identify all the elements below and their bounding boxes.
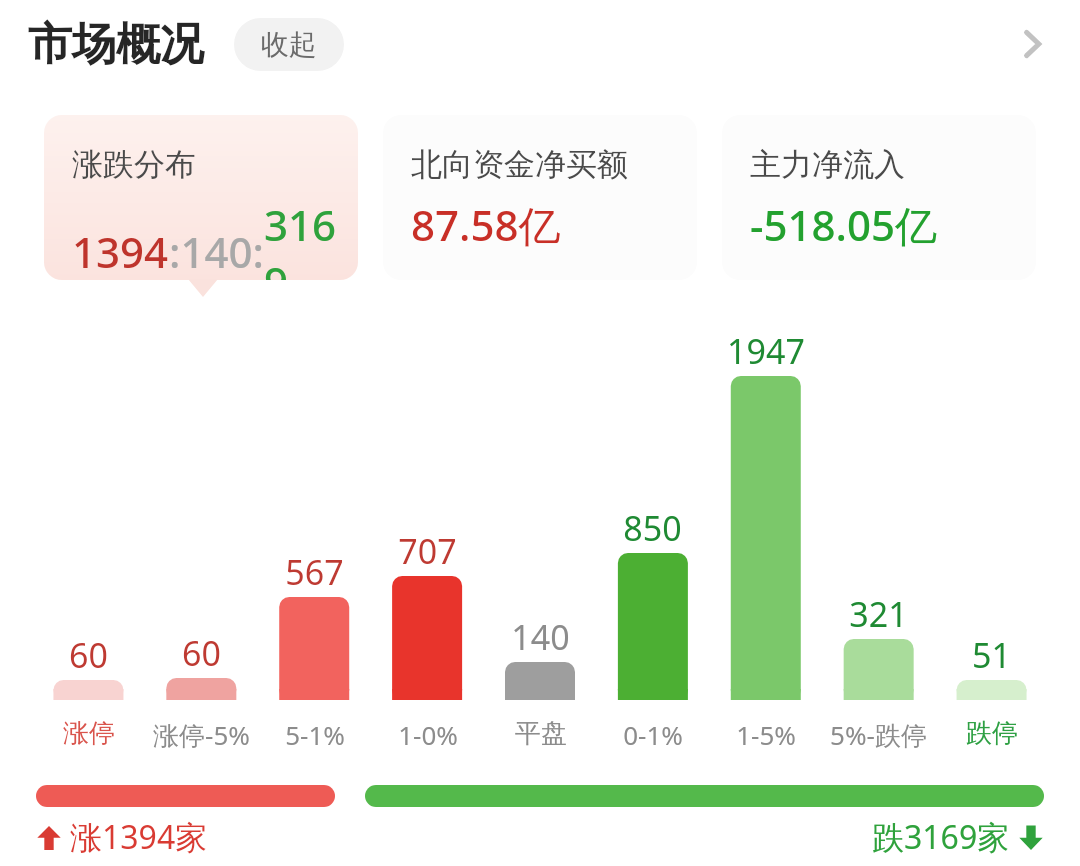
- staticText: 市场概况: [28, 17, 204, 72]
- staticText: 涨1394家: [70, 815, 208, 859]
- staticText: 3169: [264, 196, 358, 280]
- staticText: -518.05亿: [750, 196, 938, 253]
- staticText: 87.58亿: [411, 196, 561, 253]
- staticText: 主力净流入: [750, 145, 905, 184]
- staticText: 涨跌分布: [72, 145, 196, 184]
- staticText: 北向资金净买额: [411, 145, 628, 184]
- staticText: 51: [972, 632, 1011, 678]
- staticText: 跌停: [966, 717, 1018, 750]
- staticText: 321: [849, 591, 908, 637]
- staticText: :140:: [169, 223, 264, 280]
- staticText: 涨停: [63, 717, 115, 750]
- staticText: 收起: [261, 27, 317, 62]
- button[interactable]: 展开更多: [994, 6, 1070, 82]
- staticText: 跌3169家: [872, 815, 1010, 859]
- staticText: 60: [69, 632, 108, 678]
- staticText: 平盘: [515, 717, 567, 750]
- staticText: 1-5%: [736, 717, 796, 752]
- button[interactable]: 涨跌分布: [44, 115, 358, 280]
- staticText: 涨停-5%: [153, 717, 250, 753]
- staticText: 5%-跌停: [830, 717, 927, 753]
- staticText: 1947: [727, 328, 805, 374]
- staticText: 850: [623, 505, 682, 551]
- staticText: 1-0%: [398, 717, 458, 752]
- staticText: 60: [182, 630, 221, 676]
- staticText: 707: [398, 528, 457, 574]
- button[interactable]: 主力净流入: [722, 115, 1036, 280]
- staticText: 0-1%: [623, 717, 683, 752]
- staticText: 567: [285, 549, 344, 595]
- button[interactable]: 北向资金净买额: [383, 115, 697, 280]
- button[interactable]: 收起: [234, 18, 344, 71]
- staticText: 140: [511, 614, 570, 660]
- staticText: 5-1%: [285, 717, 345, 752]
- staticText: 1394: [72, 223, 169, 280]
